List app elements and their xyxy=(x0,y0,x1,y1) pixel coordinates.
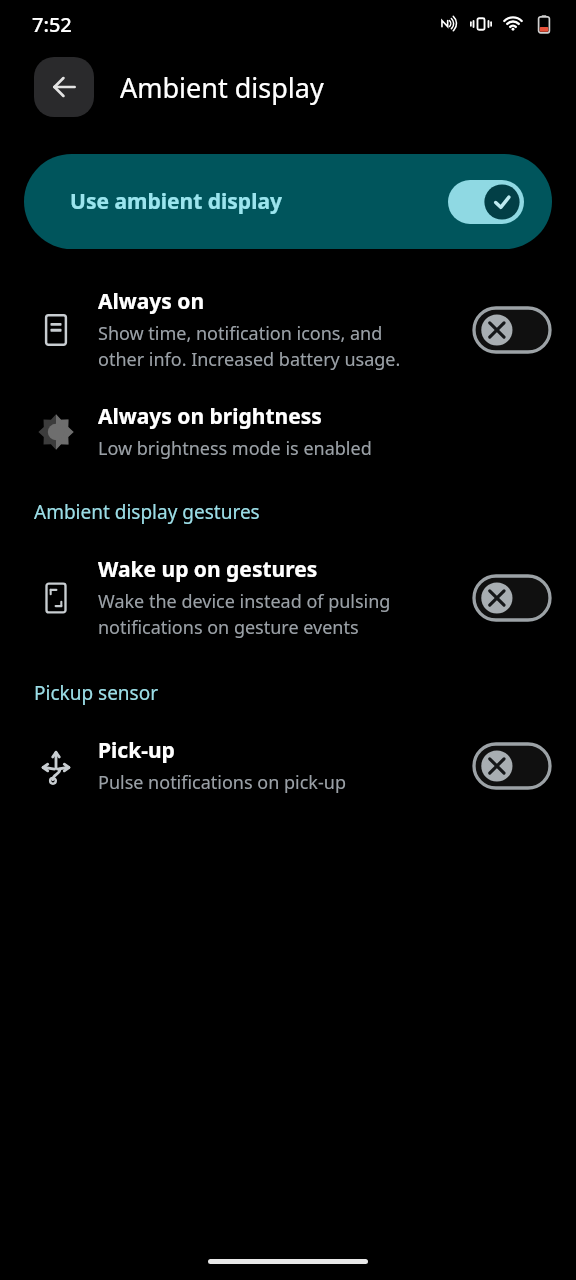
staticText: 7:52 xyxy=(32,11,72,38)
staticText: Low brightness mode is enabled xyxy=(98,436,372,461)
button[interactable]: Always on brightness xyxy=(0,398,576,465)
button[interactable]: Always on xyxy=(0,283,576,376)
staticText: Show time, notification icons, and other… xyxy=(98,321,401,372)
staticText: Pick-up xyxy=(98,736,175,765)
staticText: Wake up on gestures xyxy=(98,555,318,584)
button[interactable]: Toggle off xyxy=(474,576,550,620)
button[interactable]: Toggle off xyxy=(474,744,550,788)
button[interactable]: Wake up on gestures xyxy=(0,551,576,644)
staticText: Ambient display xyxy=(120,69,324,106)
button[interactable]: Use ambient display xyxy=(24,154,552,249)
button[interactable]: Pick-up xyxy=(0,732,576,799)
button[interactable]: Back xyxy=(34,57,94,117)
button[interactable]: Toggle off xyxy=(474,308,550,352)
staticText: Always on brightness xyxy=(98,402,322,431)
staticText: Wake the device instead of pulsing notif… xyxy=(98,589,391,640)
staticText: Always on xyxy=(98,287,205,316)
staticText: Pickup sensor xyxy=(34,680,159,706)
staticText: Pulse notifications on pick-up xyxy=(98,770,346,795)
staticText: Use ambient display xyxy=(70,187,448,216)
staticText: Ambient display gestures xyxy=(34,499,260,525)
